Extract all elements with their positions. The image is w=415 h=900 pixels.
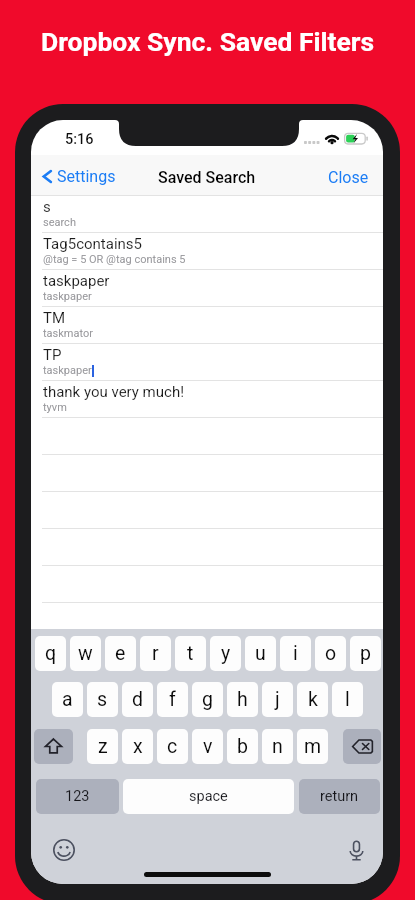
button[interactable]: e bbox=[105, 636, 136, 671]
button[interactable]: z bbox=[87, 729, 118, 764]
staticText: s bbox=[43, 198, 51, 216]
button[interactable]: d bbox=[122, 682, 153, 717]
staticText: f bbox=[169, 688, 176, 711]
staticText: o bbox=[325, 642, 337, 665]
button[interactable]: Settings bbox=[39, 156, 116, 197]
button[interactable]: k bbox=[297, 682, 328, 717]
staticText: k bbox=[308, 688, 318, 711]
button[interactable]: return bbox=[299, 779, 380, 814]
staticText: taskpaper bbox=[43, 364, 92, 377]
button[interactable]: q bbox=[35, 636, 66, 671]
staticText: u bbox=[255, 642, 266, 665]
staticText: Tag5contains5 bbox=[43, 235, 142, 253]
staticText: r bbox=[152, 642, 159, 665]
button[interactable]: g bbox=[192, 682, 223, 717]
button[interactable]: y bbox=[210, 636, 241, 671]
button[interactable]: m bbox=[297, 729, 328, 764]
button[interactable]: w bbox=[70, 636, 101, 671]
staticText: TM bbox=[43, 309, 66, 327]
button[interactable]: r bbox=[140, 636, 171, 671]
staticText: Dropbox Sync. Saved Filters bbox=[41, 26, 375, 57]
button[interactable]: Dictate bbox=[340, 834, 372, 866]
button[interactable]: 123 bbox=[36, 779, 119, 814]
staticText: x bbox=[133, 735, 143, 758]
staticText: g bbox=[202, 688, 213, 711]
staticText: z bbox=[98, 735, 108, 758]
button[interactable]: c bbox=[157, 729, 188, 764]
button[interactable]: i bbox=[280, 636, 311, 671]
staticText: t bbox=[187, 642, 194, 665]
staticText: h bbox=[237, 688, 248, 711]
staticText: l bbox=[345, 688, 350, 711]
button[interactable]: l bbox=[332, 682, 363, 717]
staticText: q bbox=[45, 642, 57, 665]
button[interactable]: s bbox=[87, 682, 118, 717]
staticText: a bbox=[62, 688, 73, 711]
staticText: i bbox=[293, 642, 298, 665]
staticText: taskpaper bbox=[43, 272, 110, 290]
button[interactable]: Emoji keyboard bbox=[48, 834, 80, 866]
button[interactable]: Shift bbox=[34, 729, 73, 764]
button[interactable]: v bbox=[192, 729, 223, 764]
staticText: b bbox=[237, 735, 248, 758]
staticText: c bbox=[167, 735, 178, 758]
button[interactable]: Tag5contains5 bbox=[31, 233, 383, 270]
staticText: space bbox=[189, 788, 228, 805]
staticText: return bbox=[320, 788, 359, 805]
staticText: search bbox=[43, 216, 76, 229]
staticText: m bbox=[304, 735, 322, 758]
button[interactable]: h bbox=[227, 682, 258, 717]
staticText: s bbox=[97, 688, 108, 711]
button[interactable]: s bbox=[31, 196, 383, 233]
staticText: d bbox=[132, 688, 143, 711]
staticText: n bbox=[272, 735, 283, 758]
staticText: taskpaper bbox=[43, 290, 92, 303]
staticText: e bbox=[115, 642, 126, 665]
staticText: 123 bbox=[65, 788, 90, 805]
button[interactable]: p bbox=[350, 636, 381, 671]
button[interactable]: f bbox=[157, 682, 188, 717]
staticText: Close bbox=[328, 168, 369, 187]
button[interactable]: space bbox=[123, 779, 294, 814]
staticText: taskmator bbox=[43, 327, 93, 340]
button[interactable]: o bbox=[315, 636, 346, 671]
staticText: w bbox=[78, 642, 93, 665]
button[interactable]: Backspace bbox=[343, 729, 381, 764]
staticText: v bbox=[203, 735, 213, 758]
staticText: thank you very much! bbox=[43, 383, 185, 401]
button[interactable]: thank you very much! bbox=[31, 381, 383, 418]
staticText: 5:16 bbox=[65, 131, 94, 148]
staticText: tyvm bbox=[43, 401, 67, 414]
button[interactable]: Close bbox=[328, 157, 369, 198]
button[interactable]: b bbox=[227, 729, 258, 764]
staticText: TP bbox=[43, 346, 62, 364]
staticText: @tag = 5 OR @tag contains 5 bbox=[43, 253, 186, 266]
button[interactable]: a bbox=[52, 682, 83, 717]
button[interactable]: t bbox=[175, 636, 206, 671]
staticText: Settings bbox=[57, 167, 116, 186]
button[interactable]: u bbox=[245, 636, 276, 671]
button[interactable]: j bbox=[262, 682, 293, 717]
staticText: y bbox=[221, 642, 231, 665]
button[interactable]: n bbox=[262, 729, 293, 764]
staticText: j bbox=[275, 688, 280, 711]
button[interactable]: x bbox=[122, 729, 153, 764]
button[interactable]: TP bbox=[31, 344, 383, 381]
staticText: Saved Search bbox=[158, 168, 256, 187]
button[interactable]: TM bbox=[31, 307, 383, 344]
staticText: p bbox=[360, 642, 371, 665]
button[interactable]: taskpaper bbox=[31, 270, 383, 307]
